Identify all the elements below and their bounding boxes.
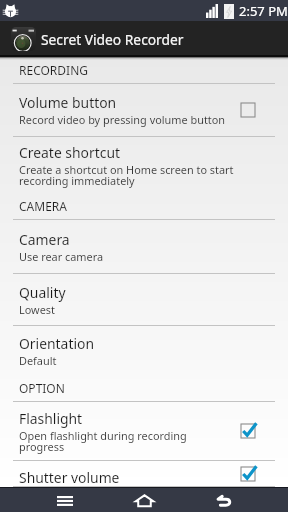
staticText: Keep the shutter sound	[19, 487, 140, 493]
staticText: Camera	[19, 230, 70, 249]
staticText: Flashlight	[19, 409, 83, 428]
staticText: Record video by pressing volume button	[19, 112, 226, 127]
button[interactable]: Quality	[0, 274, 288, 326]
button[interactable]: Flashlight	[0, 402, 288, 461]
button[interactable]: Create shortcut	[0, 137, 288, 194]
button[interactable]: Shutter volume	[0, 461, 288, 487]
staticText: CAMERA	[19, 198, 67, 214]
button[interactable]: Back	[204, 487, 244, 512]
staticText: Shutter volume	[19, 468, 120, 487]
button[interactable]: Volume button	[0, 84, 288, 137]
staticText: Lowest	[19, 302, 55, 317]
staticText: Volume button	[19, 93, 117, 112]
staticText: Orientation	[19, 334, 94, 353]
button[interactable]: Orientation	[0, 326, 288, 376]
staticText: Open flashlight during recording progres…	[19, 428, 230, 454]
staticText: Create a shortcut on Home screen to star…	[19, 162, 258, 188]
staticText: Use rear camera	[19, 249, 104, 264]
staticText: Create shortcut	[19, 143, 120, 162]
button[interactable]: Recent apps	[44, 487, 85, 512]
staticText: RECORDING	[19, 62, 89, 78]
button[interactable]: Home	[124, 487, 164, 512]
staticText: Secret Video Recorder	[41, 30, 184, 49]
staticText: 2:57 PM	[239, 2, 288, 20]
button[interactable]: Camera	[0, 220, 288, 274]
staticText: Quality	[19, 283, 66, 302]
staticText: OPTION	[19, 380, 65, 396]
staticText: Default	[19, 353, 57, 368]
